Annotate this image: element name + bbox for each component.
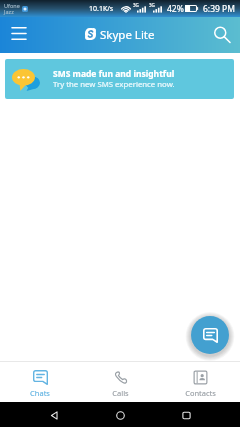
button[interactable]: SMS made fun and insightful bbox=[5, 59, 234, 99]
button[interactable]: Chats bbox=[0, 361, 80, 402]
staticText: 3G bbox=[133, 2, 139, 8]
staticText: 10.1K/s bbox=[89, 4, 114, 14]
staticText: 3G bbox=[149, 2, 155, 8]
staticText: Jazz bbox=[4, 8, 14, 15]
staticText: 42% bbox=[167, 3, 184, 15]
button[interactable]: Home bbox=[108, 403, 132, 427]
staticText: Try the new SMS experience now. bbox=[53, 79, 175, 90]
button[interactable]: New chat bbox=[191, 316, 229, 354]
staticText: SMS made fun and insightful bbox=[53, 68, 175, 80]
staticText: 6:39 PM bbox=[203, 3, 235, 15]
button[interactable]: Back bbox=[42, 403, 66, 427]
button[interactable]: Recents bbox=[174, 403, 198, 427]
staticText: Chats bbox=[30, 388, 50, 398]
staticText: Ufone bbox=[4, 2, 20, 9]
button[interactable]: Calls bbox=[80, 361, 160, 402]
button[interactable]: Contacts bbox=[160, 361, 240, 402]
staticText: Contacts bbox=[185, 388, 216, 398]
button[interactable]: Search bbox=[211, 17, 237, 53]
staticText: Skype Lite bbox=[100, 27, 155, 43]
button[interactable]: Menu bbox=[6, 17, 32, 53]
staticText: Calls bbox=[112, 388, 129, 398]
